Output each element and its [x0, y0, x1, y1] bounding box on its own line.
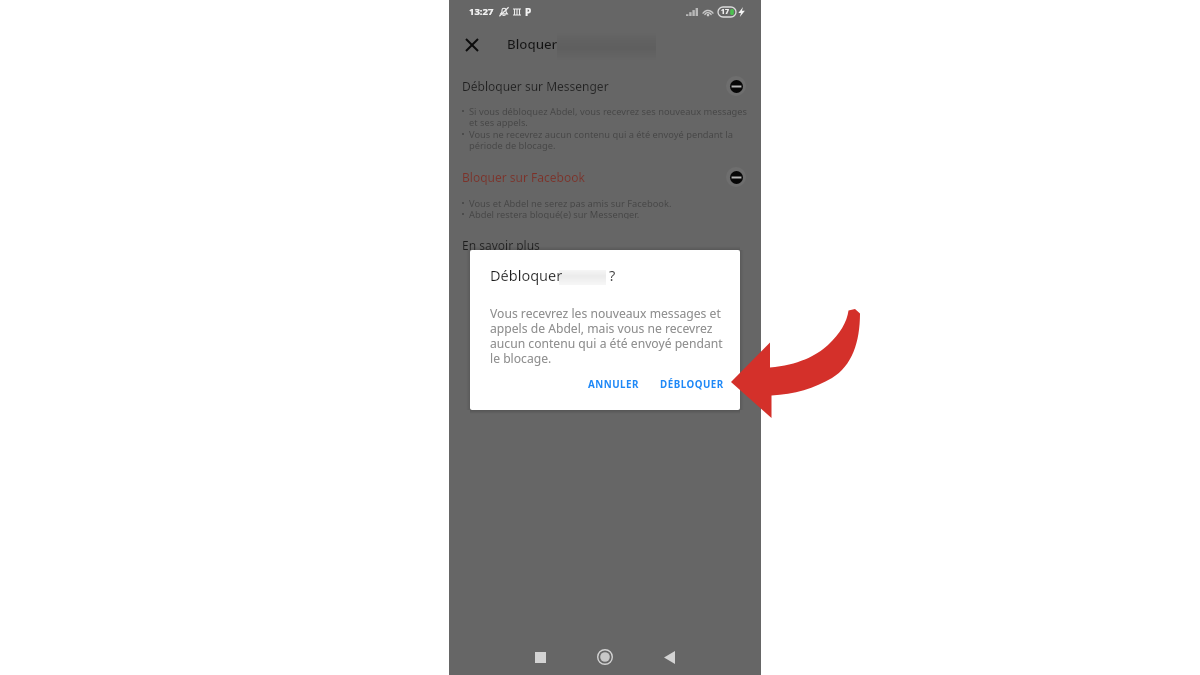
staticText: DÉBLOQUER: [660, 378, 724, 391]
button[interactable]: DÉBLOQUER: [652, 371, 732, 398]
staticText: Vous recevrez les nouveaux messages et a…: [490, 305, 727, 366]
staticText: Débloquer sur Messenger: [462, 78, 609, 94]
staticText: Bloquer: [507, 35, 558, 53]
staticText: Vous ne recevrez aucun contenu qui a été…: [469, 128, 750, 151]
button[interactable]: Bloquer sur Facebook: [449, 165, 761, 189]
staticText: Vous et Abdel ne serez pas amis sur Face…: [469, 197, 750, 208]
button[interactable]: Débloquer sur Messenger: [449, 74, 761, 98]
staticText: Abdel restera bloqué(e) sur Messenger.: [469, 208, 750, 219]
button[interactable]: ANNULER: [580, 371, 648, 398]
button[interactable]: Aperçu: [524, 641, 556, 673]
button[interactable]: Débloquer: [726, 76, 746, 96]
staticText: Si vous débloquez Abdel, vous recevrez s…: [469, 105, 750, 128]
staticText: P: [525, 5, 532, 19]
staticText: 17: [721, 7, 730, 17]
staticText: ?: [609, 265, 616, 285]
staticText: Débloquer: [490, 265, 563, 285]
button[interactable]: Débloquer: [726, 167, 746, 187]
staticText: En savoir plus: [462, 237, 540, 253]
staticText: ANNULER: [588, 378, 640, 391]
button[interactable]: Fermer: [456, 29, 487, 60]
staticText: Bloquer sur Facebook: [462, 169, 585, 185]
staticText: 13:27: [469, 5, 494, 18]
button[interactable]: Retour: [653, 641, 685, 673]
button[interactable]: Accueil: [589, 641, 621, 673]
